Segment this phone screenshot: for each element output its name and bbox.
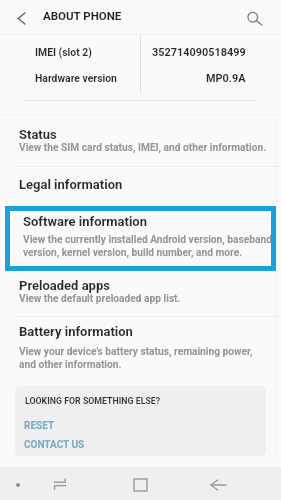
button[interactable]: More options	[8, 468, 28, 500]
button[interactable]: Software information	[5, 206, 276, 271]
staticText: View the currently installed Android ver…	[23, 234, 272, 258]
button[interactable]: Navigate up	[0, 2, 42, 35]
button[interactable]: Home	[126, 468, 154, 500]
staticText: View your device's battery status, remai…	[19, 346, 253, 370]
staticText: Software information	[23, 214, 147, 229]
staticText: Legal information	[19, 177, 123, 192]
staticText: LOOKING FOR SOMETHING ELSE?	[25, 396, 161, 406]
button[interactable]: Preloaded apps	[0, 278, 281, 310]
button[interactable]: Hardware version	[0, 71, 281, 85]
button[interactable]: Legal information	[0, 177, 281, 195]
staticText: View the default preloaded app list.	[19, 293, 181, 305]
staticText: Preloaded apps	[19, 278, 110, 293]
button[interactable]: Back	[204, 468, 232, 500]
staticText: 352714090518499	[152, 46, 246, 59]
staticText: IMEI (slot 2)	[35, 46, 92, 58]
staticText: Battery information	[19, 324, 133, 339]
button[interactable]: Recent apps	[46, 468, 74, 500]
staticText: MP0.9A	[206, 72, 246, 85]
staticText: View the SIM card status, IMEI, and othe…	[19, 142, 267, 154]
staticText: Hardware version	[35, 72, 117, 84]
button[interactable]: Battery information	[0, 324, 281, 368]
staticText: ABOUT PHONE	[43, 9, 122, 22]
button[interactable]: IMEI (slot 2)	[0, 45, 281, 59]
staticText: Status	[19, 127, 57, 142]
button[interactable]: Search	[238, 2, 272, 35]
button[interactable]: CONTACT US	[24, 439, 85, 451]
button[interactable]: RESET	[24, 420, 55, 432]
button[interactable]: Status	[0, 127, 281, 159]
